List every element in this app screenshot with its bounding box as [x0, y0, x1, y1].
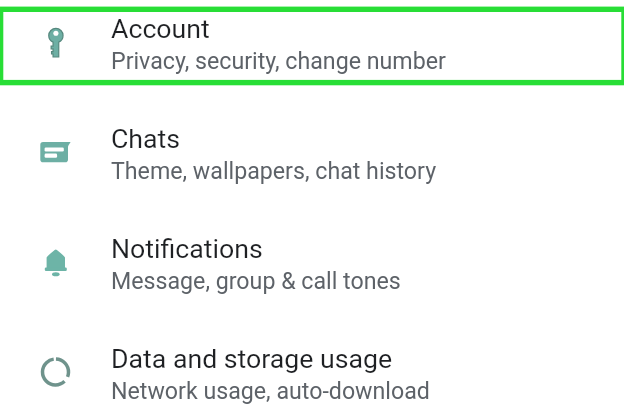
staticText: Network usage, auto-download	[111, 377, 430, 404]
button[interactable]: Notifications	[0, 220, 624, 330]
other: Chats	[0, 110, 111, 220]
staticText: Data and storage usage	[111, 343, 393, 374]
staticText: Chats	[111, 123, 181, 154]
button[interactable]: Data and storage usage	[0, 330, 624, 413]
staticText: Account	[111, 13, 210, 44]
other: Account	[0, 0, 111, 110]
staticText: Notifications	[111, 233, 263, 264]
staticText: Message, group & call tones	[111, 267, 401, 294]
other: Data and storage usage	[0, 330, 111, 413]
button[interactable]: Account	[0, 0, 624, 110]
other: Notifications	[0, 220, 111, 330]
staticText: Theme, wallpapers, chat history	[111, 157, 437, 184]
button[interactable]: Chats	[0, 110, 624, 220]
staticText: Privacy, security, change number	[111, 47, 446, 74]
